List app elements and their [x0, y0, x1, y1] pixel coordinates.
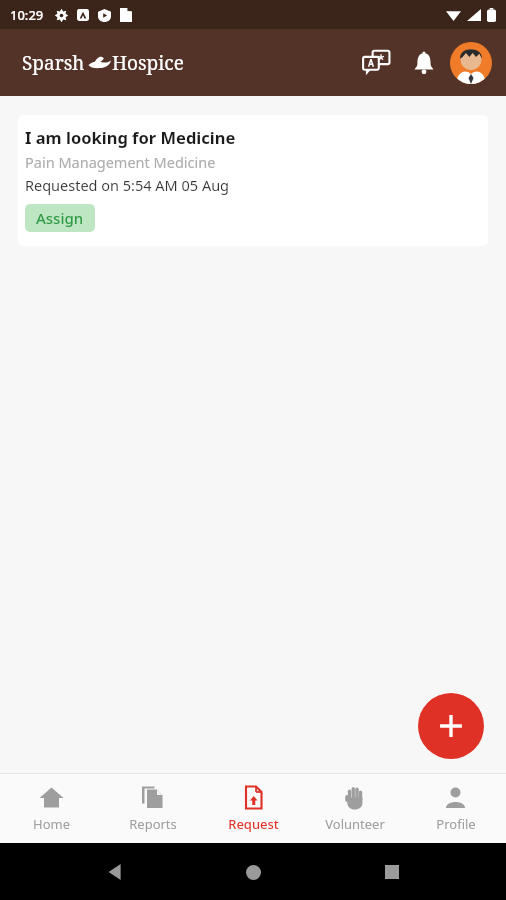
button[interactable]: Volunteer [304, 774, 405, 843]
button[interactable]: I am looking for Medicine [18, 115, 488, 246]
button[interactable]: Notifications [404, 43, 444, 83]
button[interactable]: Back [91, 848, 139, 896]
button[interactable]: Recents [368, 848, 416, 896]
staticText: Request [228, 815, 279, 833]
staticText: 10:29 [10, 6, 44, 24]
button[interactable]: Home [0, 774, 102, 843]
staticText: Requested on 5:54 AM 05 Aug [25, 175, 230, 195]
staticText: Sparsh [22, 50, 85, 76]
staticText: Reports [129, 815, 177, 833]
button[interactable]: Translate [356, 43, 396, 83]
staticText: Home [33, 815, 70, 833]
staticText: I am looking for Medicine [25, 126, 236, 148]
button[interactable]: Home [229, 848, 277, 896]
staticText: Profile [436, 815, 476, 833]
staticText: Assign [36, 208, 84, 228]
button[interactable]: Profile [450, 42, 492, 84]
button[interactable]: Profile [405, 774, 506, 843]
staticText: Volunteer [325, 815, 385, 833]
button[interactable]: Assign [25, 204, 95, 232]
button[interactable]: Reports [102, 774, 203, 843]
staticText: Hospice [112, 50, 184, 76]
button[interactable]: Add request [418, 693, 484, 759]
staticText: Pain Management Medicine [25, 152, 216, 172]
button[interactable]: Request [203, 774, 304, 843]
